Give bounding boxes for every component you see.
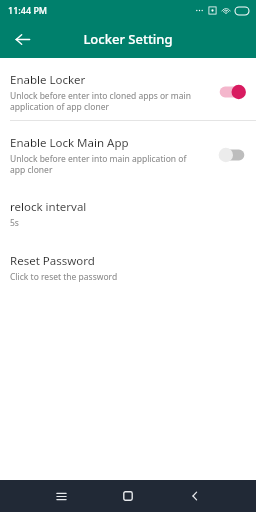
staticText: Enable Locker	[10, 72, 86, 88]
staticText: Reset Password	[10, 253, 95, 269]
button[interactable]: Back	[8, 25, 36, 53]
staticText: relock interval	[10, 199, 87, 215]
button[interactable]: Reset Password	[0, 251, 256, 285]
button[interactable]: Enable Lock Main App	[0, 133, 256, 177]
button[interactable]: Recent apps	[48, 483, 74, 509]
button[interactable]: Toggle on	[218, 83, 246, 101]
staticText: Click to reset the password	[10, 271, 118, 283]
staticText: Locker Setting	[83, 30, 173, 48]
staticText: 11:44 PM	[8, 4, 48, 16]
button[interactable]: Back	[182, 483, 208, 509]
staticText: Unlock before enter into cloned apps or …	[10, 90, 191, 112]
staticText: Enable Lock Main App	[10, 135, 129, 151]
staticText: Unlock before enter into main applicatio…	[10, 153, 187, 175]
button[interactable]: Enable Locker	[0, 70, 256, 114]
button[interactable]: Toggle off	[218, 146, 246, 164]
staticText: 5s	[10, 217, 19, 229]
button[interactable]: Home	[115, 483, 141, 509]
button[interactable]: relock interval	[0, 197, 256, 231]
